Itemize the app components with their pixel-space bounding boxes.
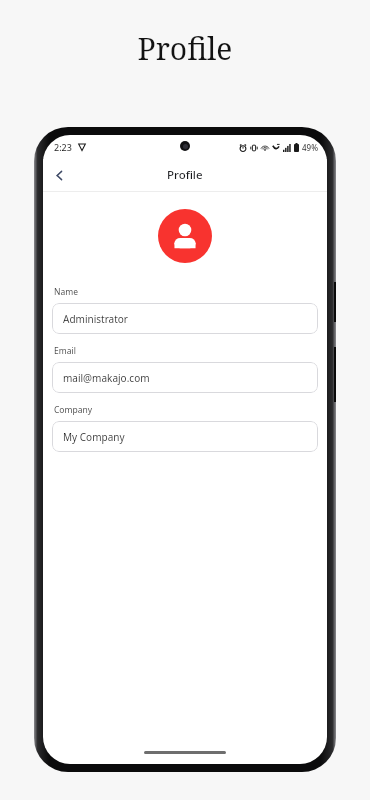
button[interactable]: mail@makajo.com xyxy=(52,362,318,393)
staticText: Administrator xyxy=(63,312,128,326)
staticText: Email xyxy=(54,345,76,357)
staticText: Name xyxy=(54,286,78,298)
staticText: Profile xyxy=(167,167,203,183)
button[interactable]: Administrator xyxy=(52,303,318,334)
staticText: Company xyxy=(54,404,93,416)
staticText: 2:23 xyxy=(54,141,72,153)
button[interactable]: My Company xyxy=(52,421,318,452)
staticText: Profile xyxy=(0,28,370,69)
staticText: My Company xyxy=(63,430,125,444)
button[interactable]: Profile picture xyxy=(158,209,212,263)
staticText: mail@makajo.com xyxy=(63,371,150,385)
staticText: 49% xyxy=(302,142,318,153)
button[interactable]: Back xyxy=(43,159,75,191)
